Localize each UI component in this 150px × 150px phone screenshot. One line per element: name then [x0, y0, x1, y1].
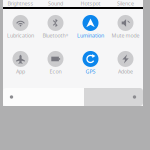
- staticText: Mute mode: [111, 32, 139, 39]
- staticText: App: [16, 68, 25, 75]
- staticText: Econ: [49, 68, 61, 75]
- staticText: Brightness: [7, 0, 33, 7]
- button[interactable]: Lumination: [73, 9, 108, 45]
- staticText: Lumination: [77, 32, 104, 39]
- button[interactable]: Silence: [108, 0, 143, 7]
- button[interactable]: GPS: [73, 45, 108, 81]
- button[interactable]: Sound: [38, 0, 73, 7]
- button[interactable]: Brightness: [3, 0, 38, 7]
- button[interactable]: Lubrication: [3, 9, 38, 45]
- button[interactable]: App: [3, 45, 38, 81]
- staticText: Lubrication: [7, 32, 34, 39]
- button[interactable]: Mute mode: [108, 9, 143, 45]
- staticText: Bluetooth+: [42, 32, 68, 39]
- staticText: Adobe: [118, 68, 133, 75]
- button[interactable]: Econ: [38, 45, 73, 81]
- button[interactable]: Hotspot: [73, 0, 108, 7]
- button[interactable]: Bluetooth+: [38, 9, 73, 45]
- button[interactable]: Adobe: [108, 45, 143, 81]
- staticText: Silence: [117, 0, 134, 7]
- button[interactable]: Brightness: [3, 88, 143, 106]
- staticText: GPS: [85, 68, 95, 75]
- staticText: Hotspot: [80, 0, 100, 7]
- staticText: Sound: [48, 0, 63, 7]
